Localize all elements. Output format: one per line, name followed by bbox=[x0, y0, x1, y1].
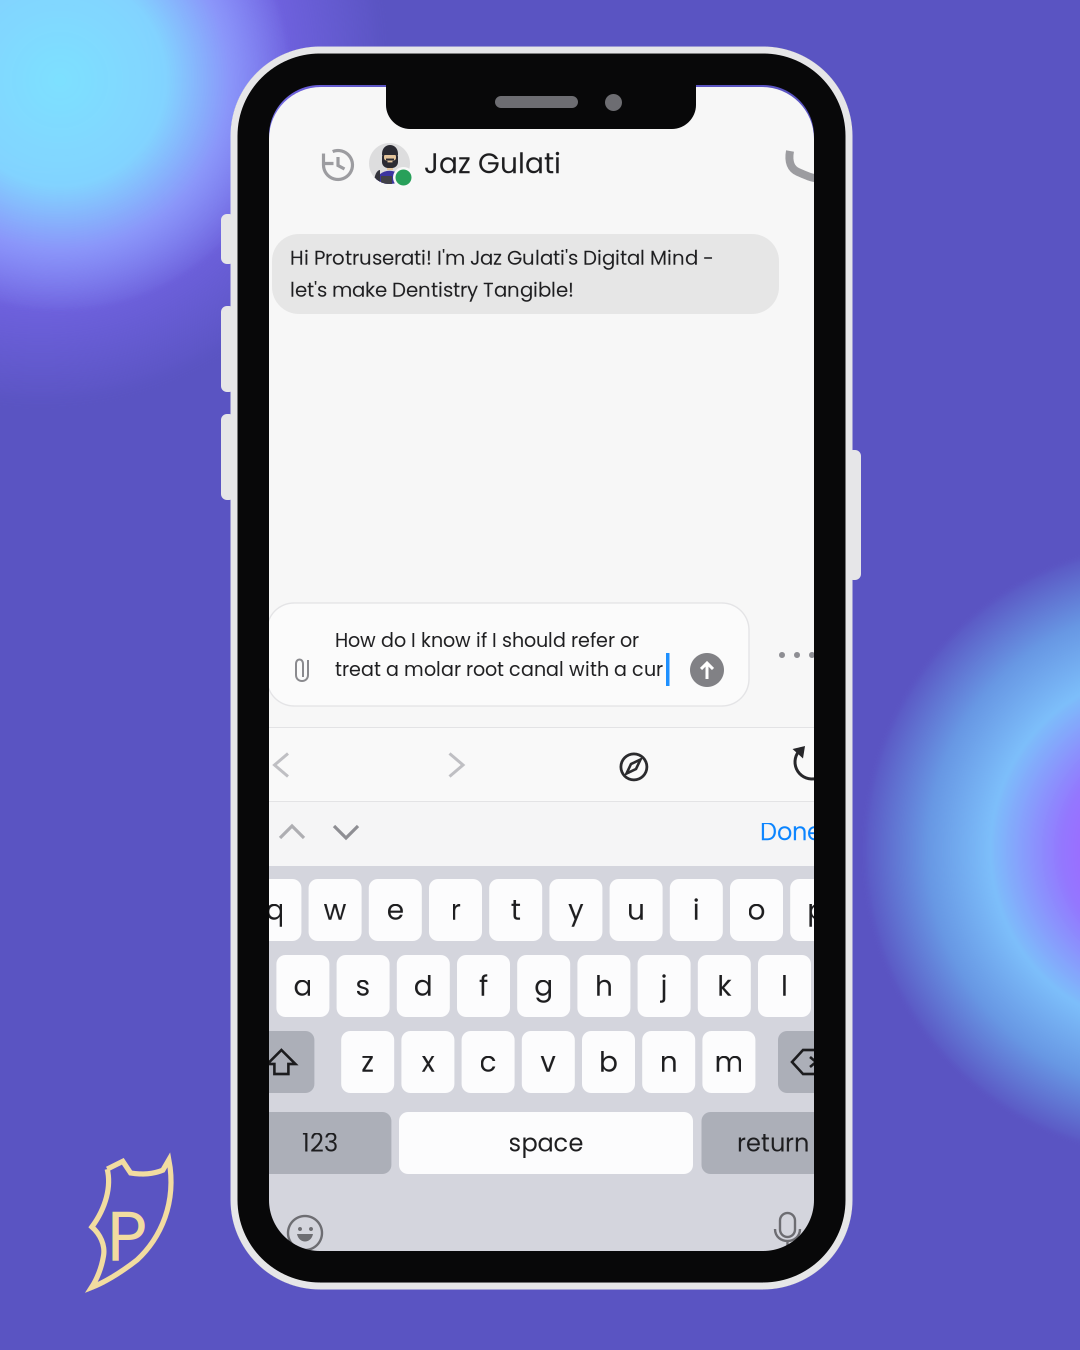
button[interactable]: v bbox=[522, 1031, 575, 1093]
button[interactable]: d bbox=[397, 955, 450, 1017]
button[interactable]: x bbox=[401, 1031, 454, 1093]
button[interactable]: Next field bbox=[332, 823, 360, 841]
button[interactable]: m bbox=[702, 1031, 755, 1093]
staticText: Hi Protruserati! I'm Jaz Gulati's Digita… bbox=[290, 244, 714, 272]
staticText: g bbox=[534, 966, 553, 1006]
button[interactable]: e bbox=[369, 879, 422, 941]
staticText: a bbox=[293, 966, 312, 1006]
button[interactable]: c bbox=[462, 1031, 515, 1093]
button[interactable]: Shift bbox=[248, 1031, 314, 1093]
button[interactable]: i bbox=[670, 879, 723, 941]
button[interactable]: o bbox=[730, 879, 783, 941]
staticText: q bbox=[265, 890, 284, 930]
staticText: return bbox=[737, 1126, 809, 1160]
staticText: z bbox=[361, 1042, 374, 1082]
button[interactable]: History bbox=[320, 147, 356, 183]
staticText: 123 bbox=[302, 1126, 338, 1160]
staticText: h bbox=[595, 966, 613, 1006]
button[interactable]: Dictate bbox=[772, 1212, 803, 1252]
button[interactable]: Forward bbox=[448, 752, 464, 778]
staticText: e bbox=[387, 890, 404, 930]
button[interactable]: n bbox=[642, 1031, 695, 1093]
button[interactable]: a bbox=[276, 955, 329, 1017]
button[interactable]: b bbox=[582, 1031, 635, 1093]
button[interactable]: g bbox=[517, 955, 570, 1017]
staticText: i bbox=[693, 890, 700, 930]
staticText: y bbox=[568, 890, 584, 930]
staticText: Jaz Gulati bbox=[424, 144, 561, 183]
button[interactable]: Safari bbox=[618, 751, 647, 780]
button[interactable]: return bbox=[701, 1112, 844, 1174]
staticText: d bbox=[414, 966, 433, 1006]
button[interactable]: Previous field bbox=[278, 823, 306, 841]
staticText: k bbox=[717, 966, 731, 1006]
button[interactable]: q bbox=[248, 879, 301, 941]
button[interactable]: Jaz Gulati bbox=[367, 141, 561, 186]
button[interactable]: 123 bbox=[248, 1112, 391, 1174]
button[interactable]: k bbox=[698, 955, 751, 1017]
staticText: b bbox=[599, 1042, 618, 1082]
button[interactable]: t bbox=[489, 879, 542, 941]
button[interactable]: Send bbox=[690, 653, 724, 687]
staticText: s bbox=[356, 966, 371, 1006]
staticText: Done bbox=[760, 815, 822, 849]
staticText: p bbox=[807, 890, 826, 930]
staticText: j bbox=[661, 966, 668, 1006]
button[interactable]: Emoji bbox=[288, 1216, 322, 1250]
button[interactable]: Done bbox=[760, 815, 822, 849]
staticText: How do I know if I should refer or bbox=[335, 627, 639, 654]
button[interactable]: z bbox=[341, 1031, 394, 1093]
button[interactable]: s bbox=[337, 955, 390, 1017]
button[interactable]: Back bbox=[273, 752, 289, 778]
staticText: o bbox=[747, 890, 765, 930]
button[interactable]: Call bbox=[785, 147, 821, 183]
staticText: x bbox=[421, 1042, 434, 1082]
button[interactable]: h bbox=[577, 955, 630, 1017]
button[interactable]: u bbox=[610, 879, 663, 941]
staticText: n bbox=[660, 1042, 678, 1082]
staticText: c bbox=[480, 1042, 497, 1082]
button[interactable]: Delete bbox=[778, 1031, 844, 1093]
button[interactable]: Reload bbox=[793, 743, 831, 781]
staticText: l bbox=[781, 966, 788, 1006]
staticText: u bbox=[627, 890, 645, 930]
button[interactable]: space bbox=[399, 1112, 693, 1174]
staticText: m bbox=[714, 1042, 743, 1082]
button[interactable]: w bbox=[309, 879, 362, 941]
staticText: P bbox=[107, 1188, 147, 1285]
staticText: treat a molar root canal with a cur bbox=[335, 656, 663, 683]
staticText: let's make Dentistry Tangible! bbox=[290, 276, 574, 304]
staticText: w bbox=[324, 890, 347, 930]
button[interactable]: j bbox=[638, 955, 691, 1017]
button[interactable]: f bbox=[457, 955, 510, 1017]
button[interactable]: y bbox=[549, 879, 602, 941]
button[interactable]: p bbox=[790, 879, 843, 941]
staticText: v bbox=[540, 1042, 556, 1082]
staticText: f bbox=[479, 966, 488, 1006]
staticText: r bbox=[450, 890, 460, 930]
button[interactable]: r bbox=[429, 879, 482, 941]
staticText: space bbox=[508, 1126, 583, 1160]
button[interactable]: l bbox=[758, 955, 811, 1017]
staticText: t bbox=[511, 890, 521, 930]
